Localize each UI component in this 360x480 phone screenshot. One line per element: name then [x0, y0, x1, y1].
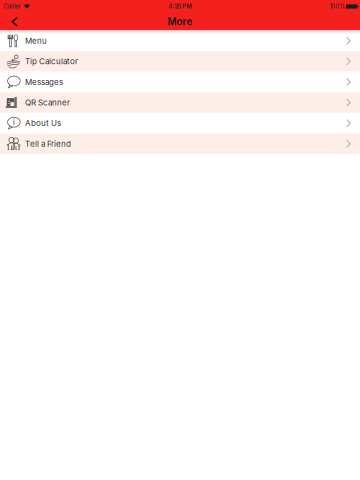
button[interactable]: Tell a Friend	[0, 133, 360, 154]
staticText: Menu	[25, 36, 47, 46]
staticText: Messages	[25, 77, 63, 87]
button[interactable]: Back	[0, 13, 30, 30]
button[interactable]: Tip Calculator	[0, 51, 360, 72]
staticText: QR Scanner	[25, 98, 70, 107]
button[interactable]: Messages	[0, 72, 360, 92]
staticText: About Us	[25, 118, 61, 128]
button[interactable]: QR Scanner	[0, 92, 360, 113]
staticText: 4:20 PM	[168, 3, 191, 10]
button[interactable]: About Us	[0, 113, 360, 133]
staticText: 100%	[329, 3, 345, 10]
staticText: Tell a Friend	[25, 139, 71, 149]
button[interactable]: Menu	[0, 30, 360, 51]
staticText: Tip Calculator	[25, 57, 78, 66]
staticText: More	[167, 16, 192, 28]
staticText: Carrier	[3, 3, 20, 10]
